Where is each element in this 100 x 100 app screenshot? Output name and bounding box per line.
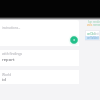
staticText: Unit (94, 32, 100, 36)
staticText: instructions… (2, 26, 21, 30)
staticText: with findings (2, 51, 23, 55)
staticText: onValue (87, 36, 100, 40)
button[interactable]: instructions… (0, 20, 79, 46)
button[interactable] (85, 30, 100, 41)
staticText: fun renderItem (88, 20, 100, 24)
staticText: val s (87, 23, 100, 27)
staticText: id (2, 77, 6, 83)
button[interactable]: World (0, 70, 79, 84)
staticText: Unit (94, 36, 100, 40)
staticText: World (2, 72, 12, 76)
staticText: report (2, 57, 15, 63)
button[interactable]: with findings (0, 50, 79, 66)
button[interactable]: Create (68, 34, 80, 46)
staticText: remember (93, 23, 100, 27)
staticText: onClick (87, 32, 100, 36)
